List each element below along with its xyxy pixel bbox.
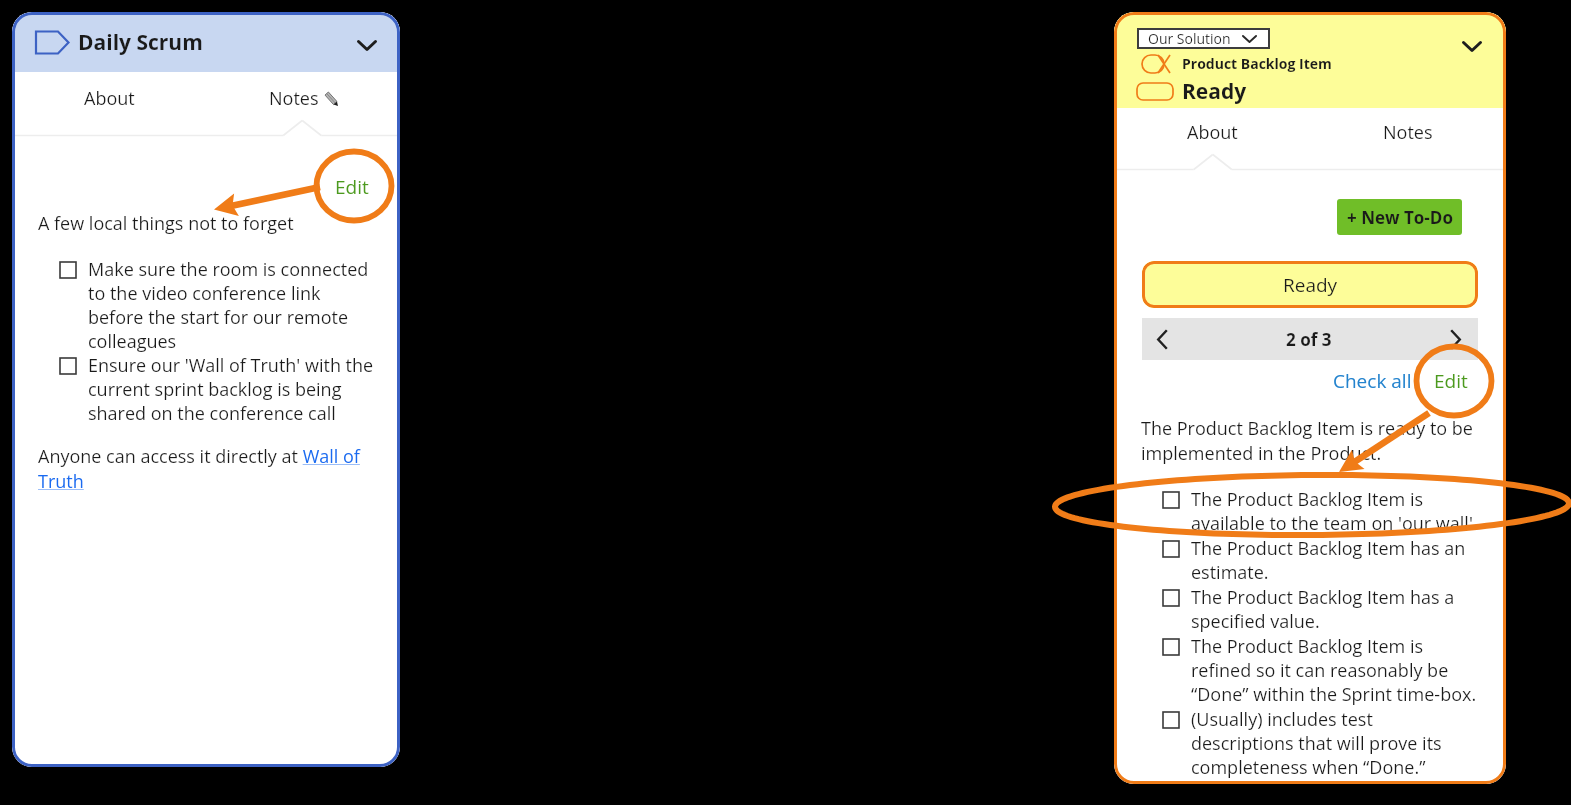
button[interactable]: The Product Backlog Item is refined so i… [1163, 634, 1478, 707]
button[interactable]: Make sure the room is connected to the v… [60, 257, 378, 353]
staticText: (Usually) includes test descriptions tha… [1191, 707, 1478, 779]
button[interactable]: Edit [335, 174, 369, 200]
button[interactable]: Ensure our 'Wall of Truth' with the curr… [60, 353, 378, 425]
staticText: Make sure the room is connected to the v… [88, 257, 378, 353]
staticText: About [84, 86, 135, 111]
button[interactable]: Our Solution [1137, 28, 1270, 49]
staticText: Ready [1283, 272, 1338, 298]
button[interactable]: The Product Backlog Item is available to… [1163, 487, 1478, 536]
button[interactable]: Notes [1310, 108, 1506, 157]
button[interactable]: About [12, 72, 206, 124]
button[interactable]: + New To-Do [1337, 199, 1462, 235]
staticText: Product Backlog Item [1182, 54, 1332, 73]
staticText: Edit [1434, 368, 1468, 394]
staticText: Edit [335, 174, 369, 200]
button[interactable]: Anyone can access it directly at Wall of… [38, 444, 378, 494]
staticText: A few local things not to forget [38, 211, 294, 236]
staticText: + New To-Do [1347, 206, 1453, 229]
staticText: The Product Backlog Item has a specified… [1191, 585, 1478, 633]
button[interactable]: Collapse Ready [1454, 12, 1506, 60]
button[interactable]: The Product Backlog Item has a specified… [1163, 585, 1478, 634]
staticText: Notes [1383, 120, 1433, 145]
staticText: About [1187, 120, 1238, 145]
staticText: Ready [1182, 77, 1247, 106]
staticText: 2 of 3 [1286, 328, 1332, 351]
button[interactable]: Next [1440, 323, 1478, 356]
staticText: Notes [269, 86, 319, 111]
staticText: Anyone can access it directly at Wall of… [38, 444, 378, 494]
staticText: The Product Backlog Item is ready to be … [1141, 416, 1478, 466]
staticText: Our Solution [1148, 29, 1231, 48]
staticText: The Product Backlog Item is refined so i… [1191, 634, 1478, 706]
button[interactable]: Collapse Daily Scrum [351, 28, 388, 57]
button[interactable]: Ready [1142, 261, 1478, 308]
button[interactable]: Previous [1142, 323, 1178, 356]
staticText: Ensure our 'Wall of Truth' with the curr… [88, 353, 378, 425]
staticText: The Product Backlog Item is available to… [1191, 487, 1478, 535]
staticText: The Product Backlog Item has an estimate… [1191, 536, 1478, 584]
button[interactable]: The Product Backlog Item has an estimate… [1163, 536, 1478, 585]
staticText: Daily Scrum [78, 28, 203, 57]
button[interactable]: Edit [1431, 364, 1471, 398]
button[interactable]: Notes [206, 72, 400, 124]
button[interactable]: Check all [1330, 364, 1415, 398]
button[interactable]: (Usually) includes test descriptions tha… [1163, 707, 1478, 780]
button[interactable]: About [1114, 108, 1310, 157]
staticText: Check all [1333, 368, 1412, 394]
